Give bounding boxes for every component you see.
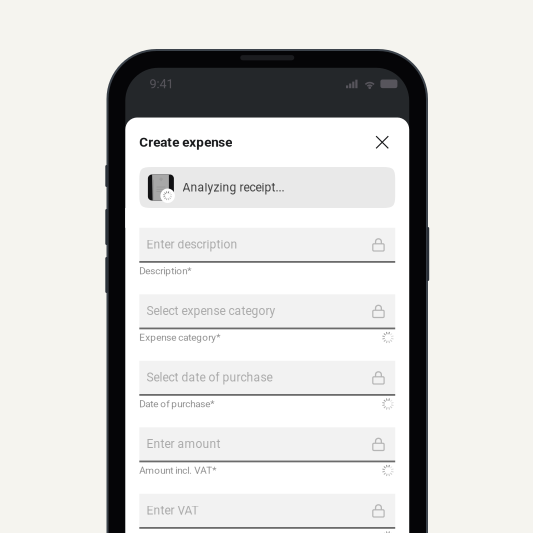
button[interactable]: Enter VAT [125,494,395,533]
staticText: Enter VAT [147,503,199,517]
staticText: Date of purchase* [139,398,214,410]
button[interactable]: Enter amount [125,427,395,494]
staticText: Select expense category [147,304,276,318]
staticText: Analyzing receipt... [182,180,284,195]
staticText: Enter description [147,237,238,251]
staticText: Amount incl. VAT* [139,465,216,476]
button[interactable]: Select expense category [125,294,395,361]
button[interactable]: Select date of purchase [125,361,395,427]
staticText: Enter amount [147,437,221,451]
button[interactable]: Close [369,129,395,155]
staticText: Create expense [139,134,232,150]
button[interactable]: Analyzing receipt... [125,167,395,208]
button[interactable]: Enter description [125,228,395,294]
staticText: Description* [139,265,191,277]
staticText: Expense category* [139,332,220,343]
staticText: 9:41 [150,76,174,91]
staticText: Select date of purchase [147,370,273,384]
